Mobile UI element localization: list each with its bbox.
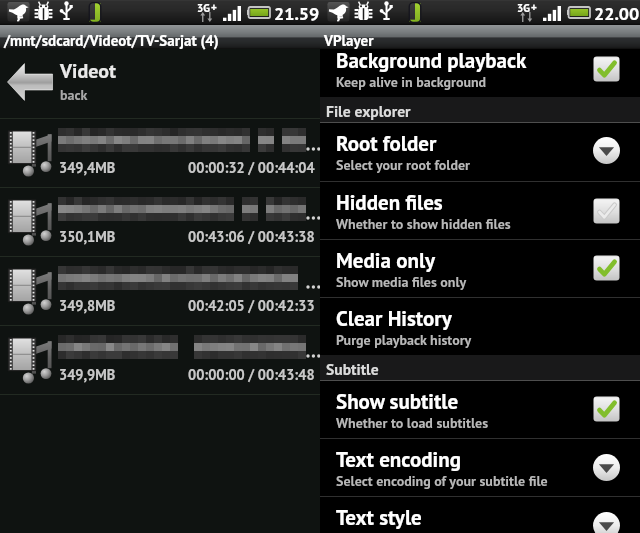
button[interactable]: Open list — [593, 137, 620, 164]
staticText: 00:43:06 / 00:43:38 — [188, 227, 315, 246]
staticText: Show subtitle — [336, 388, 459, 415]
other: Twitter notification — [7, 2, 30, 22]
staticText: Media only — [336, 247, 436, 274]
staticText: Select encoding of your subtitle file — [336, 472, 548, 490]
button[interactable]: Text encoding — [320, 439, 640, 496]
button[interactable]: Show subtitle — [320, 381, 640, 438]
staticText: 00:42:05 / 00:42:33 — [188, 296, 315, 315]
other: Storage — [407, 2, 423, 23]
staticText: 00:00:00 / 00:43:48 — [188, 365, 315, 384]
other: Battery — [247, 7, 270, 18]
button[interactable]: 350,1MB — [0, 188, 320, 256]
button[interactable]: Clear History — [320, 298, 640, 355]
button[interactable]: Enabled — [593, 56, 620, 82]
staticText: VPlayer — [324, 31, 374, 50]
staticText: Background playback — [336, 47, 527, 74]
staticText: + — [211, 0, 217, 14]
staticText: 3G — [197, 1, 210, 15]
button[interactable]: Open list — [593, 454, 620, 481]
button[interactable]: Text style — [320, 497, 640, 533]
staticText: 349,9MB — [59, 365, 116, 384]
staticText: Hidden files — [336, 189, 443, 216]
staticText: 22.00 — [594, 2, 640, 25]
staticText: Subtitle — [326, 359, 379, 379]
staticText: Whether to load subtitles — [336, 414, 489, 432]
staticText: 349,8MB — [59, 296, 116, 315]
staticText: Keep alive in background — [336, 73, 487, 91]
staticText: 21.59 — [274, 2, 320, 25]
button[interactable]: Open list — [593, 512, 620, 533]
staticText: Text style — [336, 504, 422, 531]
other: Debugging — [34, 1, 53, 21]
button[interactable]: Disabled — [593, 198, 620, 224]
other: Back — [7, 62, 53, 102]
staticText: 349,4MB — [59, 158, 116, 177]
button[interactable]: Root folder — [320, 123, 640, 181]
staticText: Videot — [60, 58, 116, 84]
button[interactable]: 349,9MB — [0, 326, 320, 394]
staticText: Whether to show hidden files — [336, 215, 511, 233]
other: 3G data — [199, 12, 214, 22]
button[interactable]: 349,8MB — [0, 257, 320, 325]
staticText: 00:00:32 / 00:44:04 — [188, 158, 315, 177]
button[interactable]: Enabled — [593, 396, 620, 422]
staticText: Clear History — [336, 305, 452, 332]
staticText: Show media files only — [336, 273, 467, 291]
button[interactable]: Hidden files — [320, 182, 640, 239]
other: Twitter notification — [327, 2, 350, 22]
button[interactable]: Back — [0, 49, 320, 118]
other: Storage — [87, 2, 103, 23]
button[interactable]: Media only — [320, 240, 640, 297]
staticText: Text encoding — [336, 446, 461, 473]
staticText: 350,1MB — [59, 227, 116, 246]
other: Signal strength — [223, 6, 241, 21]
staticText: /mnt/sdcard/Videot/TV-Sarjat (4) — [4, 31, 219, 50]
other: 3G data — [519, 12, 534, 22]
button[interactable]: 349,4MB — [0, 119, 320, 187]
other: USB connected — [59, 1, 75, 21]
staticText: Root folder — [336, 130, 437, 157]
other: USB connected — [379, 1, 395, 21]
staticText: + — [531, 0, 537, 14]
other: Signal strength — [543, 6, 561, 21]
staticText: Purge playback history — [336, 331, 472, 349]
button[interactable]: Enabled — [593, 255, 620, 281]
other: Debugging — [354, 1, 373, 21]
staticText: File explorer — [326, 101, 411, 121]
other: Battery — [567, 7, 590, 18]
staticText: back — [60, 86, 88, 104]
staticText: Select your root folder — [336, 156, 471, 174]
button[interactable]: Background playback — [320, 49, 640, 97]
staticText: 3G — [517, 1, 530, 15]
